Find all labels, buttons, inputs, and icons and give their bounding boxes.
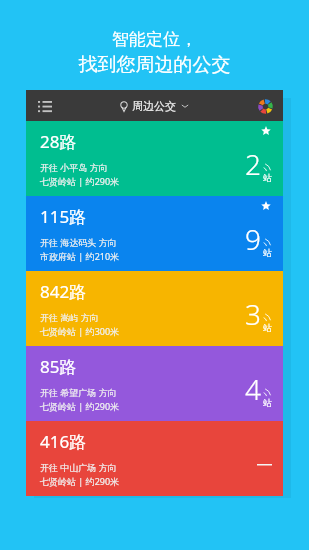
- staticText: 28路: [40, 130, 77, 153]
- button[interactable]: 28路: [26, 121, 283, 196]
- button[interactable]: App logo: [254, 95, 276, 117]
- staticText: 85路: [40, 355, 77, 378]
- staticText: 站: [263, 322, 272, 333]
- button[interactable]: 85路: [26, 346, 283, 421]
- staticText: 周边公交: [132, 99, 176, 113]
- staticText: 站: [263, 172, 272, 183]
- staticText: 842路: [40, 280, 87, 303]
- staticText: 七贤岭站 | 约300米: [40, 325, 120, 337]
- staticText: 找到您周边的公交: [0, 53, 309, 77]
- staticText: 115路: [40, 205, 87, 228]
- staticText: 七贤岭站 | 约290米: [40, 475, 120, 487]
- staticText: 开往 希望广场 方向: [40, 386, 117, 398]
- button[interactable]: 416路: [26, 421, 283, 496]
- staticText: 9: [245, 220, 261, 258]
- staticText: 开往 嵩屿 方向: [40, 311, 99, 323]
- staticText: 站: [263, 397, 272, 408]
- staticText: 市政府站 | 约210米: [40, 250, 120, 262]
- staticText: 3: [245, 295, 261, 333]
- staticText: 4: [245, 370, 261, 408]
- staticText: 2: [245, 145, 261, 183]
- staticText: 416路: [40, 430, 87, 453]
- staticText: 开往 小平岛 方向: [40, 161, 108, 173]
- staticText: 七贤岭站 | 约290米: [40, 400, 120, 412]
- button[interactable]: 115路: [26, 196, 283, 271]
- button[interactable]: Menu: [32, 93, 58, 119]
- staticText: 开往 海达码头 方向: [40, 236, 117, 248]
- staticText: 开往 中山广场 方向: [40, 461, 117, 473]
- staticText: 智能定位，: [0, 29, 309, 50]
- button[interactable]: Favourite: [259, 199, 273, 213]
- staticText: 七贤岭站 | 约290米: [40, 175, 120, 187]
- button[interactable]: 周边公交: [120, 99, 189, 113]
- button[interactable]: Favourite: [259, 124, 273, 138]
- button[interactable]: 842路: [26, 271, 283, 346]
- staticText: 站: [263, 247, 272, 258]
